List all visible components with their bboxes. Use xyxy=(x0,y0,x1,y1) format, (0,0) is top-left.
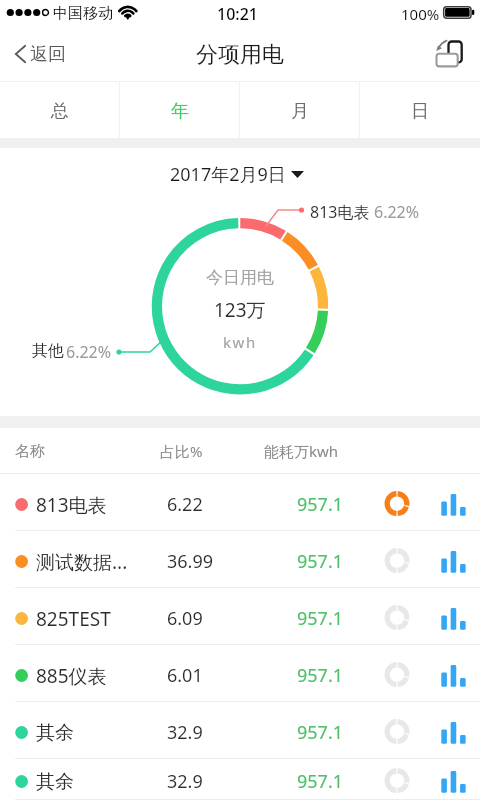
staticText: 10:21 xyxy=(217,3,258,25)
staticText: 813电表 xyxy=(310,201,370,223)
staticText: 6.22 xyxy=(167,492,203,517)
button[interactable]: Bar chart xyxy=(436,657,470,691)
staticText: 测试数据... xyxy=(36,549,128,575)
button[interactable]: 885仪表 xyxy=(0,645,480,702)
staticText: 6.22% xyxy=(66,341,112,363)
button[interactable]: Bar chart xyxy=(436,600,470,634)
button[interactable]: Bar chart xyxy=(436,543,470,577)
staticText: 中国移动 xyxy=(53,4,113,23)
staticText: 32.9 xyxy=(167,720,203,745)
staticText: 能耗万kwh xyxy=(264,441,339,461)
staticText: kwh xyxy=(223,332,257,352)
button[interactable]: 年 xyxy=(120,82,240,138)
staticText: 885仪表 xyxy=(36,663,107,689)
staticText: 6.22% xyxy=(374,201,420,223)
staticText: 今日用电 xyxy=(206,267,274,288)
staticText: 其余 xyxy=(36,770,74,794)
button[interactable]: 其余 xyxy=(0,702,480,759)
button[interactable]: 825TEST xyxy=(0,588,480,645)
button[interactable]: 813电表 xyxy=(0,474,480,531)
button[interactable]: 测试数据... xyxy=(0,531,480,588)
button[interactable]: Pie chart xyxy=(380,657,414,691)
staticText: 957.1 xyxy=(297,549,344,574)
staticText: 6.01 xyxy=(167,663,203,688)
staticText: 其他 xyxy=(32,341,64,361)
staticText: 日 xyxy=(411,100,429,123)
staticText: 32.9 xyxy=(167,769,203,794)
staticText: 6.09 xyxy=(167,606,203,631)
staticText: 957.1 xyxy=(297,769,344,794)
staticText: 957.1 xyxy=(297,663,344,688)
button[interactable]: Bar chart xyxy=(436,763,470,797)
button[interactable]: Pie chart xyxy=(380,763,414,797)
button[interactable]: Bar chart xyxy=(436,486,470,520)
staticText: 2017年2月9日 xyxy=(170,162,286,187)
button[interactable]: Bar chart xyxy=(436,714,470,748)
button[interactable]: Rotate screen xyxy=(427,35,473,77)
staticText: 123万 xyxy=(214,297,266,323)
staticText: 957.1 xyxy=(297,720,344,745)
staticText: 36.99 xyxy=(167,549,214,574)
staticText: 名称 xyxy=(15,442,45,461)
staticText: 月 xyxy=(291,100,309,123)
button[interactable]: Pie chart xyxy=(380,486,414,520)
staticText: 100% xyxy=(401,4,440,24)
staticText: 813电表 xyxy=(36,492,107,518)
button[interactable]: 日 xyxy=(360,82,480,138)
staticText: 返回 xyxy=(30,43,66,66)
button[interactable]: 月 xyxy=(240,82,360,138)
button[interactable]: 其余 xyxy=(0,759,480,800)
button[interactable]: 总 xyxy=(0,82,120,138)
button[interactable]: Pie chart xyxy=(380,600,414,634)
staticText: 其余 xyxy=(36,721,74,745)
staticText: 957.1 xyxy=(297,492,344,517)
staticText: 占比% xyxy=(160,441,203,461)
staticText: 825TEST xyxy=(36,606,111,632)
button[interactable]: 返回 xyxy=(4,31,82,77)
staticText: 分项用电 xyxy=(196,41,284,69)
button[interactable]: Pie chart xyxy=(380,543,414,577)
button[interactable]: 2017年2月9日 xyxy=(162,160,312,188)
staticText: 年 xyxy=(171,100,189,123)
staticText: 957.1 xyxy=(297,606,344,631)
staticText: 总 xyxy=(51,100,69,123)
button[interactable]: Pie chart xyxy=(380,714,414,748)
